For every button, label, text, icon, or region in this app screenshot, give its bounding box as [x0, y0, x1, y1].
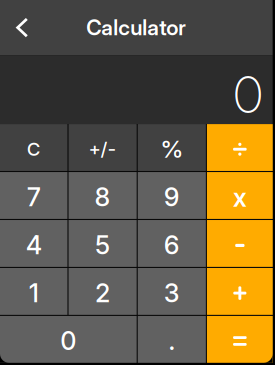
button[interactable]: 1 — [0, 268, 67, 315]
staticText: 8 — [95, 182, 111, 212]
staticText: 4 — [26, 230, 42, 260]
button[interactable]: Equals — [207, 316, 273, 363]
button[interactable]: Divide — [207, 124, 273, 171]
staticText: . — [168, 325, 175, 356]
staticText: 3 — [164, 278, 180, 308]
staticText: 2 — [95, 278, 110, 308]
staticText: +/- — [89, 138, 117, 160]
button[interactable]: 7 — [0, 172, 67, 219]
button[interactable]: 8 — [69, 172, 137, 219]
button[interactable]: C — [0, 124, 67, 171]
staticText: 6 — [164, 230, 180, 260]
button[interactable]: 6 — [138, 220, 206, 267]
button[interactable]: 9 — [138, 172, 206, 219]
staticText: 7 — [27, 182, 41, 212]
button[interactable]: +/- — [69, 124, 137, 171]
button[interactable]: . — [138, 316, 206, 363]
staticText: 1 — [29, 278, 39, 308]
button[interactable]: Back — [0, 0, 44, 55]
button[interactable]: % — [138, 124, 206, 171]
button[interactable]: Multiply — [207, 172, 273, 219]
staticText: 9 — [164, 182, 180, 212]
button[interactable]: 3 — [138, 268, 206, 315]
staticText: 0 — [234, 64, 263, 125]
staticText: Calculator — [86, 15, 186, 40]
staticText: 0 — [60, 325, 76, 356]
button[interactable]: 5 — [69, 220, 137, 267]
button[interactable]: Subtract — [207, 220, 273, 267]
button[interactable]: Add — [207, 268, 273, 315]
staticText: x — [233, 182, 247, 213]
button[interactable]: 0 — [0, 316, 137, 363]
button[interactable]: 2 — [69, 268, 137, 315]
staticText: % — [160, 134, 183, 163]
staticText: 5 — [95, 230, 110, 260]
staticText: C — [27, 138, 41, 160]
button[interactable]: 4 — [0, 220, 67, 267]
